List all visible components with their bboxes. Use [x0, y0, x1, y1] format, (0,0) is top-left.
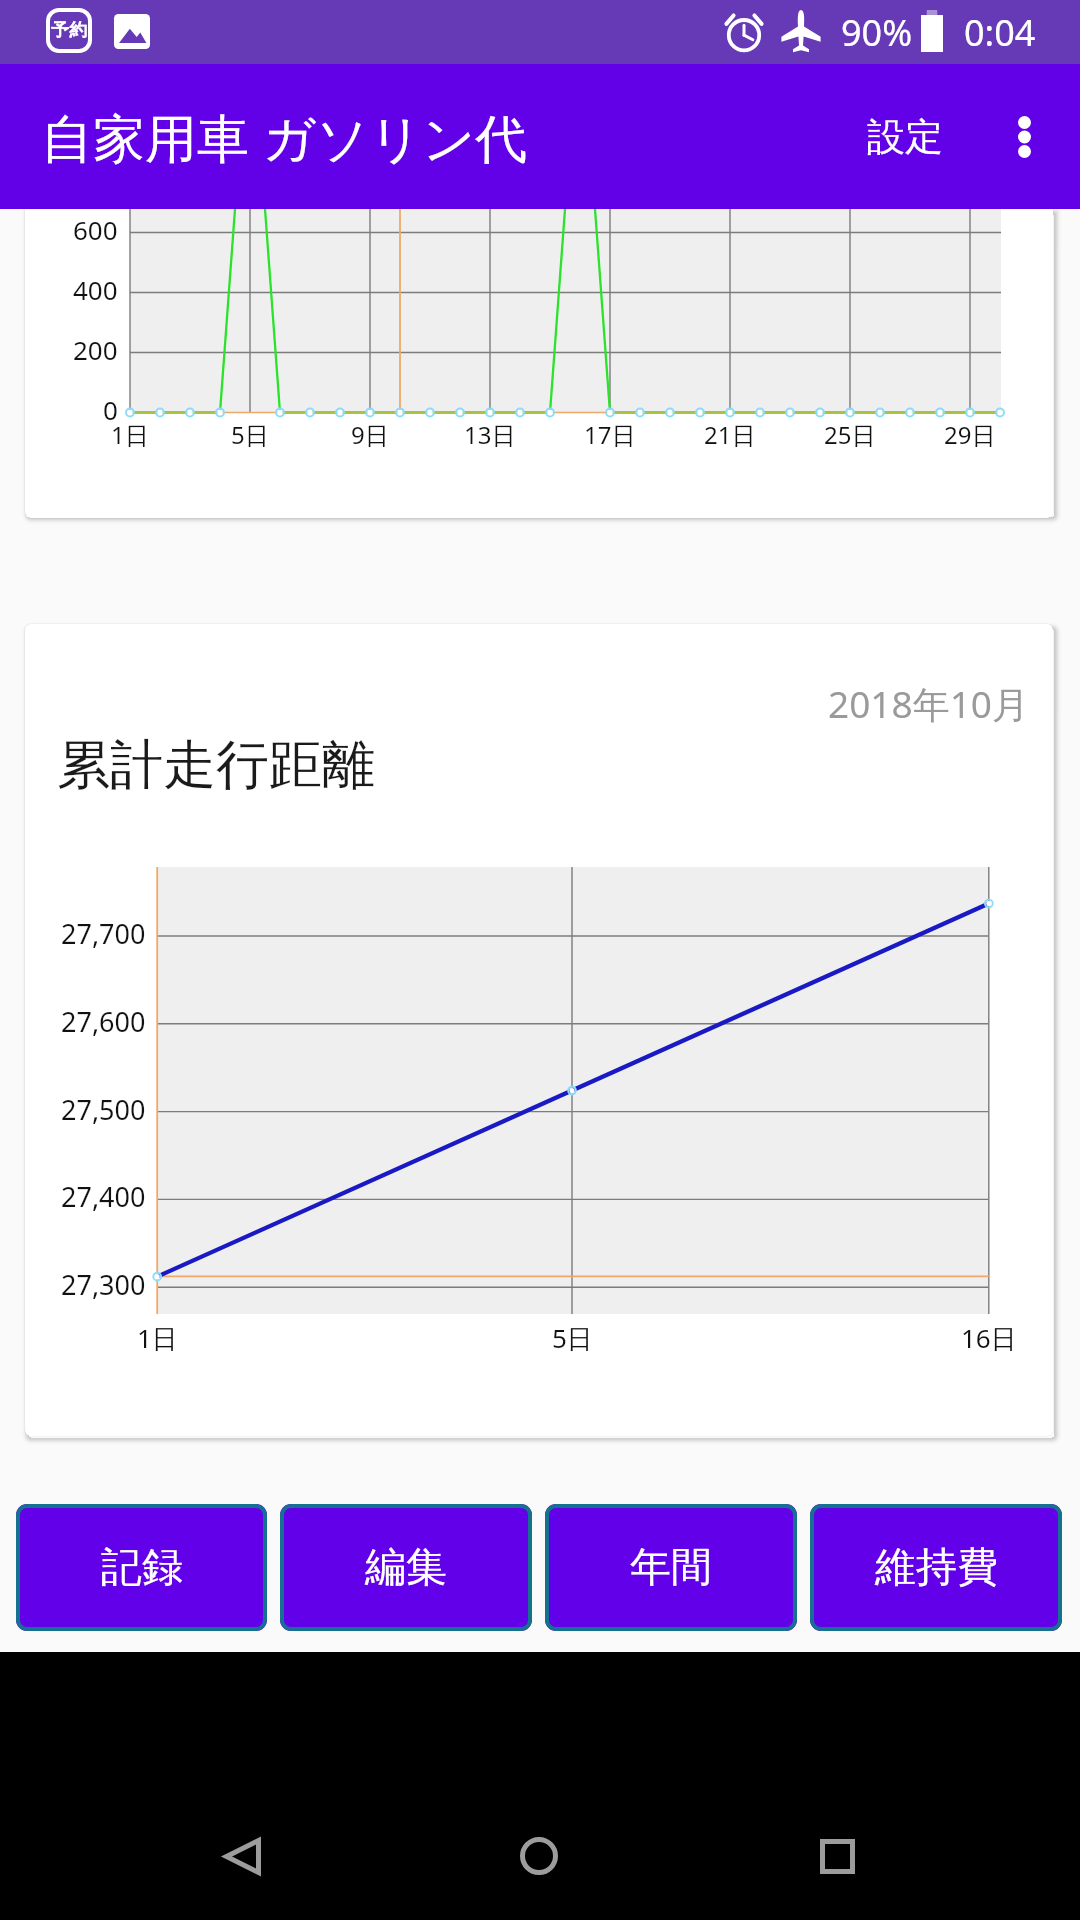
staticText: 2018年10月 — [828, 678, 1029, 729]
staticText: 27,400 — [61, 1178, 146, 1215]
staticText: 25日 — [824, 418, 876, 451]
staticText: 600 — [73, 212, 118, 247]
button[interactable]: 編集 — [280, 1504, 532, 1631]
staticText: 17日 — [584, 418, 636, 451]
staticText: 累計走行距離 — [57, 732, 375, 799]
staticText: 0 — [103, 392, 118, 427]
button[interactable]: 維持費 — [810, 1504, 1062, 1631]
staticText: 1日 — [137, 1320, 178, 1356]
staticText: 13日 — [464, 418, 516, 451]
staticText: 5日 — [231, 418, 269, 451]
staticText: 90% — [841, 8, 913, 57]
staticText: 予約 — [51, 19, 87, 42]
button[interactable]: More options — [988, 64, 1060, 209]
staticText: 21日 — [704, 418, 756, 451]
staticText: 29日 — [944, 418, 996, 451]
button[interactable]: 600 — [25, 209, 1053, 518]
staticText: 編集 — [365, 1542, 447, 1594]
button[interactable]: 設定 — [848, 64, 962, 209]
button[interactable]: 2018年10月 — [25, 624, 1053, 1436]
button[interactable]: 年間 — [545, 1504, 797, 1631]
staticText: 200 — [73, 332, 118, 367]
button[interactable]: Home — [479, 1796, 599, 1916]
button[interactable]: Back — [182, 1796, 302, 1916]
staticText: 設定 — [867, 113, 943, 161]
staticText: 自家用車 ガソリン代 — [41, 101, 528, 172]
staticText: 27,700 — [61, 915, 146, 952]
staticText: 27,500 — [61, 1091, 146, 1128]
button[interactable]: 記録 — [16, 1504, 267, 1631]
staticText: 27,600 — [61, 1003, 146, 1040]
staticText: 16日 — [961, 1320, 1017, 1356]
staticText: 記録 — [101, 1542, 183, 1594]
staticText: 27,300 — [61, 1266, 146, 1303]
staticText: 0:04 — [964, 8, 1036, 57]
staticText: 9日 — [351, 418, 389, 451]
staticText: 維持費 — [875, 1542, 998, 1594]
staticText: 1日 — [111, 418, 149, 451]
staticText: 400 — [73, 272, 118, 307]
button[interactable]: Recent apps — [777, 1796, 897, 1916]
staticText: 5日 — [552, 1320, 593, 1356]
staticText: 年間 — [630, 1542, 712, 1594]
